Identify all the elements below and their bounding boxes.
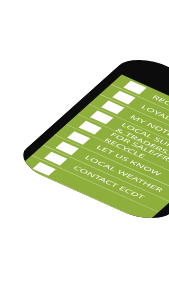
button[interactable]: LOCAL SUPPLIERS & TRADERS	[78, 104, 169, 171]
button[interactable]: FOR SALE/FREE/RECYCLE	[66, 114, 169, 181]
staticText: FOR SALE/FREE/RECYCLE	[103, 131, 169, 181]
staticText: LOCAL SUPPLIERS & TRADERS	[115, 121, 169, 171]
staticText: LOCAL WEATHER	[83, 154, 166, 193]
button[interactable]: LOCAL WEATHER	[43, 135, 169, 202]
staticText: CONTACT ECDT	[71, 164, 147, 201]
staticText: LOYALTY CARD	[139, 103, 169, 139]
button[interactable]	[20, 155, 158, 222]
button[interactable]: MY NOTICES	[89, 94, 169, 161]
button[interactable]: LOYALTY CARD	[100, 84, 169, 151]
staticText: RECIPES	[150, 93, 169, 116]
button[interactable]: CONTACT ECDT	[32, 145, 169, 212]
staticText: LET US KNOW	[94, 143, 164, 177]
staticText: MY NOTICES	[128, 113, 169, 144]
button[interactable]: LET US KNOW	[55, 125, 169, 191]
button[interactable]: RECIPES	[111, 75, 169, 141]
